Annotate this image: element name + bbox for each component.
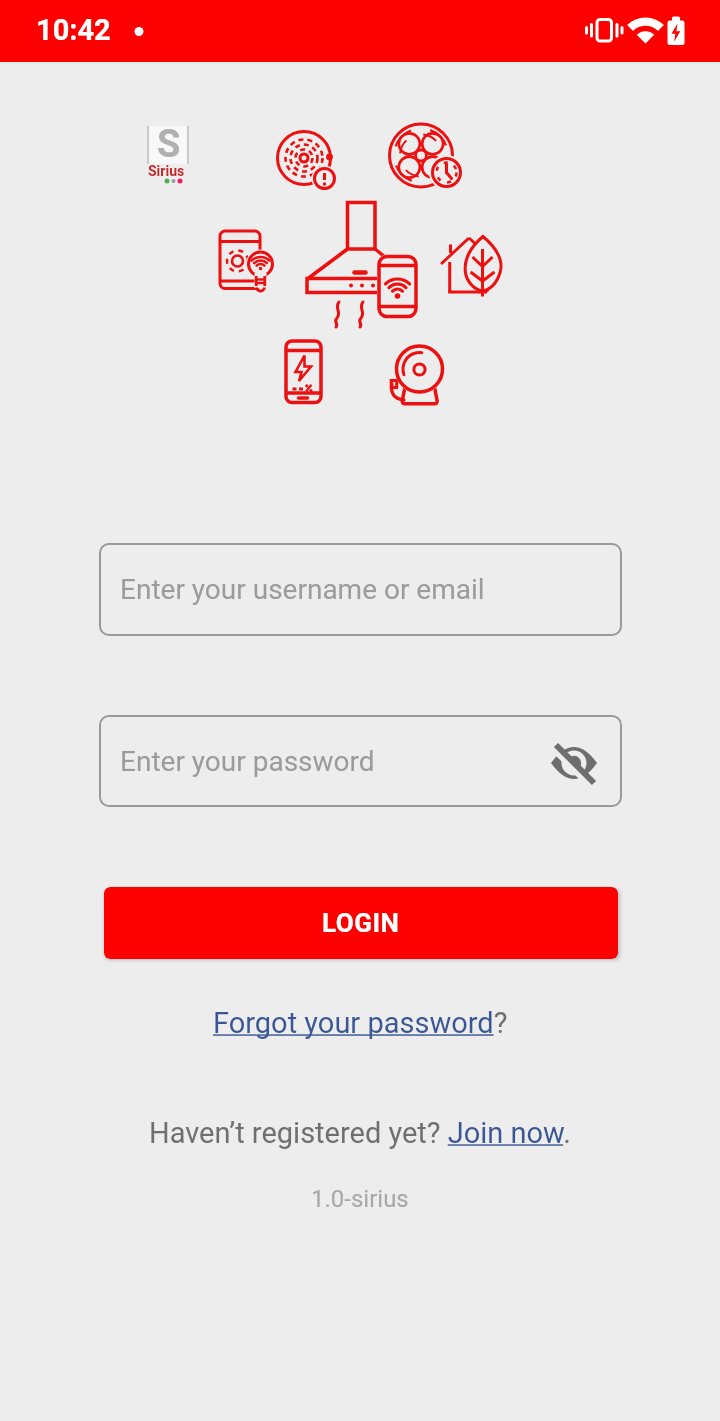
staticText: LOGIN (322, 908, 400, 938)
staticText: Enter your username or email (120, 573, 485, 606)
button[interactable]: Enter your username or email (99, 543, 622, 636)
button[interactable]: LOGIN (104, 887, 618, 959)
staticText: 1.0-sirius (311, 1185, 409, 1213)
button[interactable]: Forgot your password? (213, 1006, 508, 1040)
staticText: S (157, 122, 181, 167)
staticText: Enter your password (120, 745, 375, 778)
staticText: Sirius (148, 163, 185, 179)
button[interactable]: Haven’t registered yet? Join now. (149, 1116, 571, 1150)
staticText: 10:42 (36, 13, 111, 47)
button[interactable]: Enter your password (99, 715, 622, 807)
button[interactable] (550, 739, 598, 787)
